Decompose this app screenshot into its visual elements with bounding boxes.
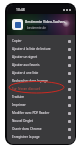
staticText: Nouvel Onglet [12,119,68,123]
staticText: 10:48 [16,7,25,12]
button[interactable]: Ajouter à une liste [7,69,75,77]
button[interactable]: Ajouter un signet [7,53,75,61]
staticText: Bestimmte Video-Suchen-Aus [25,19,71,23]
staticText: bestimmte.de [27,26,46,30]
staticText: Copier [12,39,68,43]
button[interactable]: Ajouter aux favoris [7,61,75,69]
staticText: Traduire [12,95,68,99]
button[interactable]: Ouvrir dans Chrome [7,125,75,133]
button[interactable]: Imprimer [7,101,75,109]
button[interactable]: Copier [7,37,75,45]
button[interactable]: Traduire [7,93,75,101]
staticText: Ouvrir dans Chrome [12,127,68,131]
staticText: Ajouter aux favoris [12,63,68,67]
button[interactable]: Sur l'écran d'accueil [7,85,75,93]
staticText: Imprimer [12,103,68,107]
staticText: Ajouter à une liste [12,71,68,75]
staticText: Ajouter à la liste de lecture [12,47,68,51]
staticText: Ajouter un signet [12,55,68,59]
staticText: Modifier avec PDF Reader [12,111,68,115]
staticText: Enregistrer la page [12,135,68,139]
button[interactable]: Modifier avec PDF Reader [7,109,75,117]
staticText: Sur l'écran d'accueil [12,87,68,91]
button[interactable]: Rechercher dans la page [7,77,75,85]
button[interactable]: Nouvel Onglet [7,117,75,125]
button[interactable]: Enregistrer la page [7,133,75,141]
staticText: Rechercher dans la page [12,79,68,83]
button[interactable]: Ajouter à la liste de lecture [7,45,75,53]
